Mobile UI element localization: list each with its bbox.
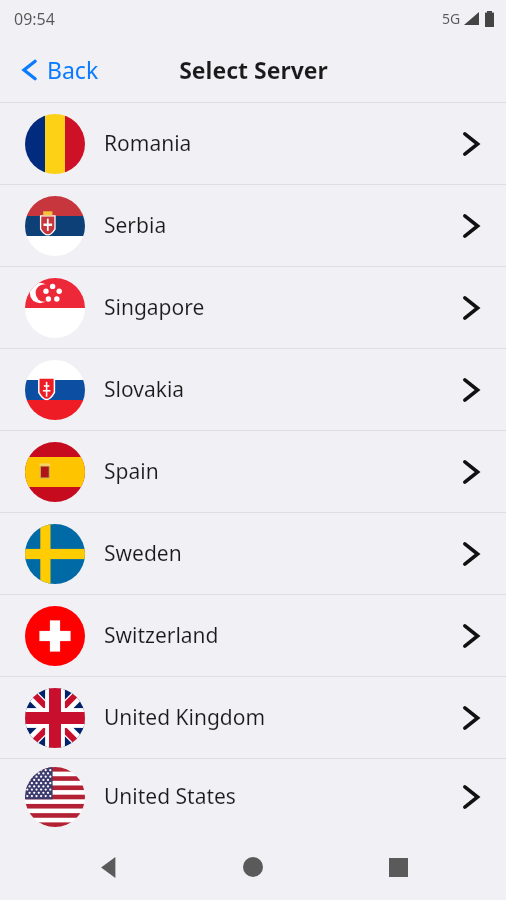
staticText: Serbia [104, 211, 460, 240]
staticText: Switzerland [104, 621, 460, 650]
other: Open Spain [460, 455, 482, 489]
staticText: Spain [104, 457, 460, 486]
staticText: Slovakia [104, 375, 460, 404]
other: Open Serbia [460, 209, 482, 243]
button[interactable]: Spain [0, 431, 506, 512]
button[interactable]: Serbia [0, 185, 506, 266]
staticText: Singapore [104, 293, 460, 322]
staticText: Sweden [104, 539, 460, 568]
staticText: 5G [442, 9, 461, 28]
other: Open United Kingdom [460, 701, 482, 735]
button[interactable]: United Kingdom [0, 677, 506, 758]
button[interactable]: Recent apps [362, 834, 434, 900]
button[interactable]: Sweden [0, 513, 506, 594]
button[interactable]: Back [73, 834, 145, 900]
staticText: United States [104, 782, 460, 811]
other: Open Romania [460, 127, 482, 161]
staticText: Romania [104, 129, 460, 158]
staticText: 09:54 [14, 8, 55, 30]
button[interactable]: Back [0, 46, 113, 93]
button[interactable]: Slovakia [0, 349, 506, 430]
button[interactable]: United States [0, 759, 506, 834]
staticText: Back [47, 54, 99, 85]
other: Open Switzerland [460, 619, 482, 653]
staticText: Select Server [179, 54, 328, 85]
other: Open Singapore [460, 291, 482, 325]
other: Open United States [460, 780, 482, 814]
other: Open Sweden [460, 537, 482, 571]
staticText: United Kingdom [104, 703, 460, 732]
button[interactable]: Romania [0, 103, 506, 184]
button[interactable]: Singapore [0, 267, 506, 348]
other: Open Slovakia [460, 373, 482, 407]
button[interactable]: Home [217, 834, 289, 900]
button[interactable]: Switzerland [0, 595, 506, 676]
